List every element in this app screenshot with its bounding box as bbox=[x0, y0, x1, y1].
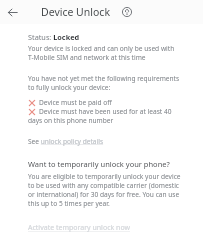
staticText: Want to temporarily unlock your phone? bbox=[28, 159, 170, 169]
staticText: days on this phone number bbox=[28, 116, 114, 125]
staticText: T-Mobile SIM and network at this time bbox=[28, 53, 146, 62]
button[interactable]: Back bbox=[0, 0, 24, 24]
staticText: Device must be paid off bbox=[39, 98, 112, 107]
staticText: Device Unlock bbox=[41, 5, 110, 19]
staticText: Your device is locked and can only be us… bbox=[28, 44, 175, 53]
staticText: or international) for 30 days for free. … bbox=[28, 190, 180, 199]
button[interactable]: Activate temporary unlock now bbox=[28, 223, 130, 233]
staticText: You have not yet met the following requi… bbox=[28, 74, 180, 83]
staticText: Device must have been used for at least … bbox=[39, 107, 172, 116]
staticText: See unlock policy details bbox=[28, 137, 104, 146]
staticText: Status: Locked bbox=[28, 32, 80, 42]
staticText: this up to 5 times per year. bbox=[28, 199, 110, 208]
staticText: to fully unlock your device: bbox=[28, 83, 111, 92]
button[interactable]: Help bbox=[118, 3, 136, 21]
staticText: Activate temporary unlock now bbox=[28, 223, 130, 233]
staticText: You are eligible to temporarily unlock y… bbox=[28, 172, 181, 181]
button[interactable]: See unlock policy details bbox=[28, 137, 104, 146]
staticText: to be used with any compatible carrier (… bbox=[28, 181, 180, 190]
